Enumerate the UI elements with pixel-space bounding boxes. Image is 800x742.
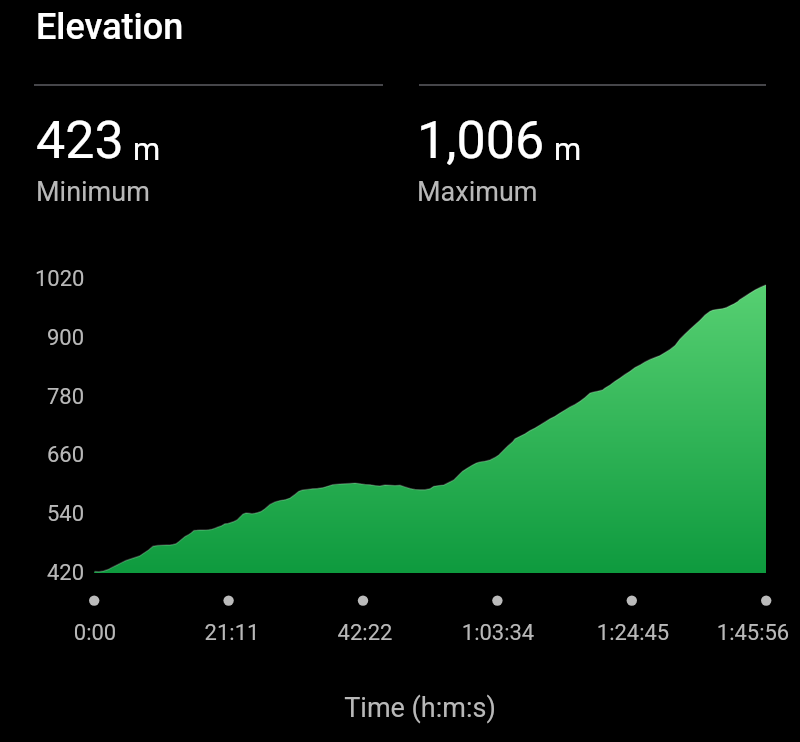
button[interactable]: 1,006 — [417, 110, 582, 208]
staticText: 540 — [47, 501, 85, 527]
staticText: Elevation — [36, 6, 184, 48]
staticText: 1:03:34 — [418, 620, 578, 646]
staticText: 1:45:56 — [673, 620, 800, 646]
staticText: m — [133, 131, 161, 167]
staticText: Time (h:m:s) — [220, 692, 620, 724]
staticText: 1,006 — [417, 110, 545, 171]
staticText: 420 — [47, 560, 85, 586]
staticText: 42:22 — [285, 620, 445, 646]
staticText: Minimum — [36, 176, 150, 208]
staticText: 900 — [47, 325, 85, 351]
staticText: 780 — [47, 384, 85, 410]
staticText: m — [554, 131, 582, 167]
staticText: 0:00 — [15, 620, 175, 646]
staticText: 423 — [36, 110, 124, 171]
staticText: 21:11 — [152, 620, 312, 646]
staticText: 660 — [47, 442, 85, 468]
button[interactable]: Elevation profile chart — [34, 250, 766, 620]
staticText: Maximum — [417, 176, 538, 208]
staticText: 1020 — [35, 266, 85, 292]
staticText: 1:24:45 — [553, 620, 713, 646]
button[interactable]: 423 — [36, 110, 161, 208]
